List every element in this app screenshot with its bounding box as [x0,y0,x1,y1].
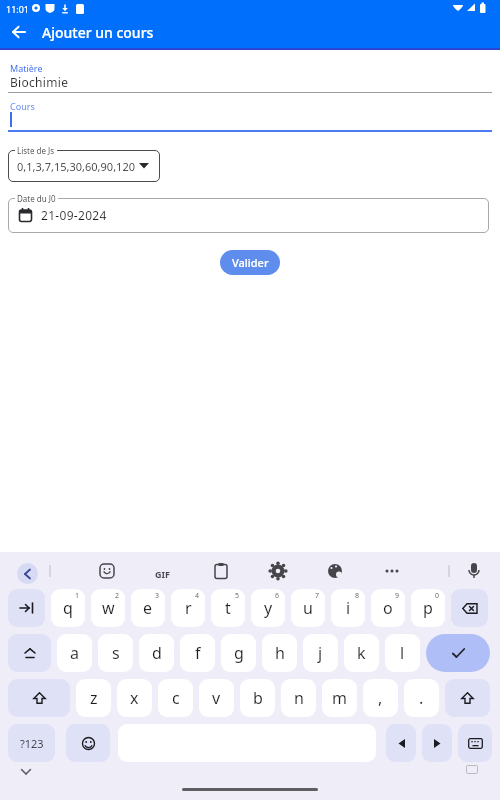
button[interactable]: f [180,634,215,672]
button[interactable] [152,561,176,585]
button[interactable] [266,561,290,585]
button[interactable] [6,20,32,44]
staticText: 6 [275,591,280,601]
button[interactable] [0,95,500,132]
staticText: r [185,597,192,619]
button[interactable]: d [139,634,174,672]
staticText: n [294,687,304,709]
staticText: f [195,642,201,664]
button[interactable]: s [98,634,133,672]
button[interactable]: 21-09-2024 [8,198,489,233]
button[interactable] [451,589,488,627]
button[interactable] [0,57,500,94]
button[interactable] [209,561,233,585]
button[interactable]: p [411,589,445,627]
staticText: a [70,642,79,664]
staticText: b [253,687,263,709]
button[interactable] [458,724,492,762]
staticText: e [143,597,153,619]
staticText: Matière [10,62,43,74]
staticText: Valider [232,255,269,270]
button[interactable] [323,561,347,585]
staticText: j [318,642,323,664]
button[interactable]: m [322,679,357,717]
button[interactable]: k [344,634,379,672]
button[interactable] [66,724,110,762]
staticText: z [90,687,98,709]
button[interactable]: . [404,679,439,717]
staticText: 1 [75,591,80,601]
staticText: 4 [195,591,200,601]
button[interactable]: a [57,634,92,672]
staticText: 3 [155,591,160,601]
staticText: y [264,597,273,619]
button[interactable]: 0,1,3,7,15,30,60,90,120 [8,150,160,182]
staticText: 0 [435,591,440,601]
staticText: u [303,597,313,619]
button[interactable]: ?123 [8,724,55,762]
button[interactable]: c [158,679,193,717]
staticText: Ajouter un cours [42,23,154,42]
staticText: v [212,687,221,709]
button[interactable] [426,634,490,672]
button[interactable]: u [291,589,325,627]
staticText: Biochimie [10,74,69,90]
staticText: Date du J0 [17,193,56,204]
button[interactable]: v [199,679,234,717]
staticText: 5 [235,591,240,601]
staticText: 8 [355,591,360,601]
staticText: 2 [115,591,120,601]
button[interactable] [422,724,452,762]
staticText: m [332,687,347,709]
staticText: o [383,597,393,619]
button[interactable] [17,563,38,584]
button[interactable]: n [281,679,316,717]
staticText: s [112,642,120,664]
button[interactable]: o [371,589,405,627]
button[interactable]: w [91,589,125,627]
button[interactable]: t [211,589,245,627]
button[interactable]: r [171,589,205,627]
button[interactable] [8,634,51,672]
button[interactable]: x [117,679,152,717]
button[interactable]: z [76,679,111,717]
staticText: p [423,597,433,619]
staticText: i [346,597,351,619]
staticText: GIF [155,568,170,580]
staticText: d [152,642,162,664]
button[interactable] [445,679,490,717]
button[interactable]: e [131,589,165,627]
button[interactable]: l [385,634,420,672]
button[interactable] [386,724,416,762]
button[interactable] [8,589,45,627]
button[interactable]: y [251,589,285,627]
staticText: h [275,642,285,664]
button[interactable]: b [240,679,275,717]
staticText: 21-09-2024 [41,207,107,223]
button[interactable]: g [221,634,256,672]
staticText: k [357,642,366,664]
button[interactable]: j [303,634,338,672]
button[interactable]: h [262,634,297,672]
staticText: 9 [395,591,400,601]
staticText: , [378,687,383,709]
button[interactable]: q [51,589,85,627]
button[interactable]: Valider [220,250,280,275]
staticText: g [234,642,244,664]
staticText: c [172,687,180,709]
button[interactable]: , [363,679,398,717]
staticText: ?123 [20,736,44,751]
staticText: w [102,597,115,619]
staticText: 7 [315,591,320,601]
staticText: . [419,687,424,709]
staticText: q [63,597,73,619]
button[interactable] [8,679,70,717]
button[interactable] [380,561,404,585]
staticText: x [130,687,139,709]
staticText: 0,1,3,7,15,30,60,90,120 [17,159,135,174]
button[interactable] [95,561,119,585]
staticText: l [400,642,405,664]
button[interactable] [462,561,486,585]
button[interactable]: i [331,589,365,627]
